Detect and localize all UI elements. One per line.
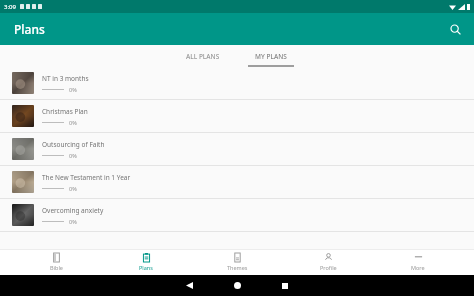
button[interactable]: Back xyxy=(172,275,206,296)
button[interactable]: Recents xyxy=(268,275,302,296)
button[interactable]: More xyxy=(383,249,453,275)
button[interactable]: Bible xyxy=(21,249,91,275)
button[interactable]: Home xyxy=(220,275,254,296)
staticText: Christmas Plan xyxy=(42,107,88,116)
staticText: Outsourcing of Faith xyxy=(42,140,105,149)
button[interactable]: MY PLANS xyxy=(237,45,305,67)
staticText: Bible xyxy=(50,264,63,271)
staticText: More xyxy=(411,264,425,271)
button[interactable]: NT in 3 months xyxy=(0,67,474,100)
staticText: 0% xyxy=(69,86,77,93)
staticText: MY PLANS xyxy=(255,52,287,61)
staticText: 0% xyxy=(69,119,77,126)
button[interactable]: Plans xyxy=(111,249,181,275)
staticText: The New Testament in 1 Year xyxy=(42,173,131,182)
button[interactable]: Overcoming anxiety xyxy=(0,199,474,232)
staticText: NT in 3 months xyxy=(42,74,89,83)
staticText: 3:09 xyxy=(4,3,16,11)
staticText: Plans xyxy=(139,264,153,271)
button[interactable]: Outsourcing of Faith xyxy=(0,133,474,166)
button[interactable]: Christmas Plan xyxy=(0,100,474,133)
button[interactable]: Themes xyxy=(202,249,272,275)
staticText: Plans xyxy=(14,21,45,37)
button[interactable]: Profile xyxy=(293,249,363,275)
staticText: Profile xyxy=(320,264,337,271)
button[interactable]: ALL PLANS xyxy=(169,45,237,67)
staticText: Overcoming anxiety xyxy=(42,206,104,215)
button[interactable]: The New Testament in 1 Year xyxy=(0,166,474,199)
staticText: Themes xyxy=(227,264,248,271)
staticText: 0% xyxy=(69,218,77,225)
staticText: ALL PLANS xyxy=(186,52,220,61)
button[interactable]: Search xyxy=(444,18,466,40)
staticText: 0% xyxy=(69,185,77,192)
staticText: 0% xyxy=(69,152,77,159)
